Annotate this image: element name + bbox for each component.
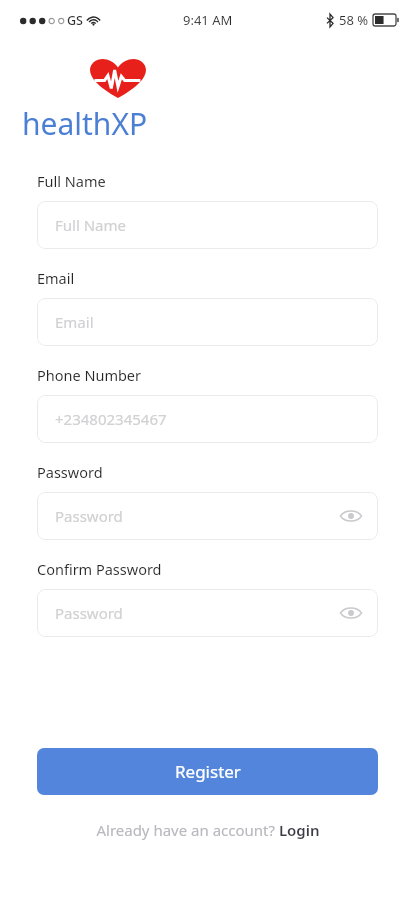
button[interactable]: Show password — [338, 503, 364, 529]
button[interactable]: Already have an account? Login — [90, 818, 326, 842]
staticText: Full Name — [55, 215, 126, 235]
staticText: healthXP — [22, 103, 148, 144]
staticText: Email — [55, 312, 94, 332]
button[interactable]: Password — [37, 589, 378, 637]
button[interactable]: Password — [37, 492, 378, 540]
staticText: +234802345467 — [55, 409, 167, 429]
staticText: 9:41 AM — [183, 11, 233, 29]
staticText: Phone Number — [37, 365, 142, 385]
staticText: Email — [37, 268, 75, 288]
staticText: Register — [175, 760, 241, 783]
staticText: Password — [55, 603, 123, 623]
staticText: GS — [67, 12, 83, 29]
staticText: Full Name — [37, 171, 106, 191]
staticText: Password — [37, 462, 103, 482]
button[interactable]: Full Name — [37, 201, 378, 249]
staticText: Confirm Password — [37, 559, 162, 579]
staticText: Password — [55, 506, 123, 526]
staticText: Already have an account? Login — [96, 820, 320, 840]
staticText: 58 % — [339, 11, 369, 29]
button[interactable]: Email — [37, 298, 378, 346]
button[interactable]: +234802345467 — [37, 395, 378, 443]
button[interactable]: Register — [37, 748, 378, 795]
button[interactable]: Show password — [338, 600, 364, 626]
